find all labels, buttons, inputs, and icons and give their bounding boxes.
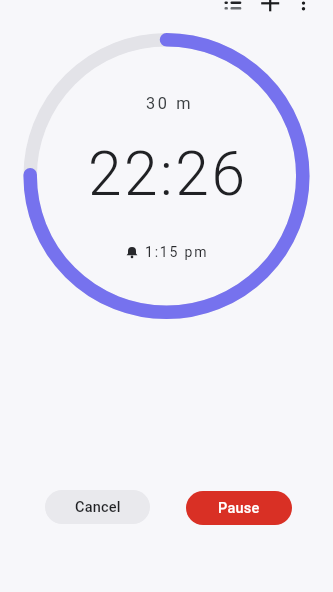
staticText: 22:26 [88,139,248,210]
staticText: 30 m [146,94,194,113]
button[interactable] [219,0,247,20]
button[interactable] [294,0,314,20]
button[interactable]: Pause [186,491,292,525]
button[interactable] [257,0,283,20]
staticText: Cancel [75,499,121,516]
staticText: 1:15 pm [145,244,209,260]
button[interactable]: Cancel [45,490,150,524]
staticText: Pause [218,500,260,517]
